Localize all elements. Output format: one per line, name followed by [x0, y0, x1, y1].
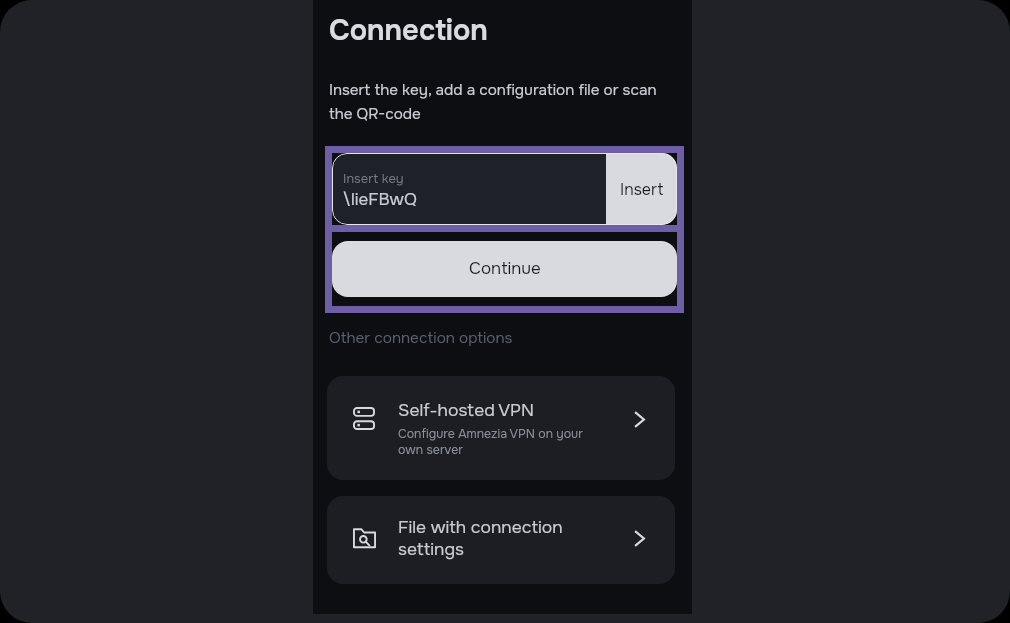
- staticText: File with connection settings: [398, 516, 603, 560]
- other: Open: [634, 411, 645, 428]
- button[interactable]: Insert key: [332, 153, 677, 225]
- button[interactable]: Continue: [332, 241, 677, 297]
- staticText: Insert: [620, 179, 664, 199]
- staticText: Self-hosted VPN: [398, 399, 535, 421]
- button[interactable]: File with connection settings: [327, 496, 675, 584]
- button[interactable]: Insert: [606, 153, 677, 225]
- staticText: \lieFBwQnk: [343, 189, 420, 206]
- staticText: Configure Amnezia VPN on your own server: [398, 426, 603, 457]
- staticText: Insert key: [343, 170, 404, 187]
- other: Open: [634, 530, 645, 547]
- staticText: Connection: [329, 12, 488, 49]
- staticText: Continue: [469, 258, 541, 280]
- button[interactable]: Self-hosted VPN: [327, 376, 675, 480]
- staticText: Insert the key, add a configuration file…: [329, 80, 671, 124]
- staticText: Other connection options: [329, 328, 513, 348]
